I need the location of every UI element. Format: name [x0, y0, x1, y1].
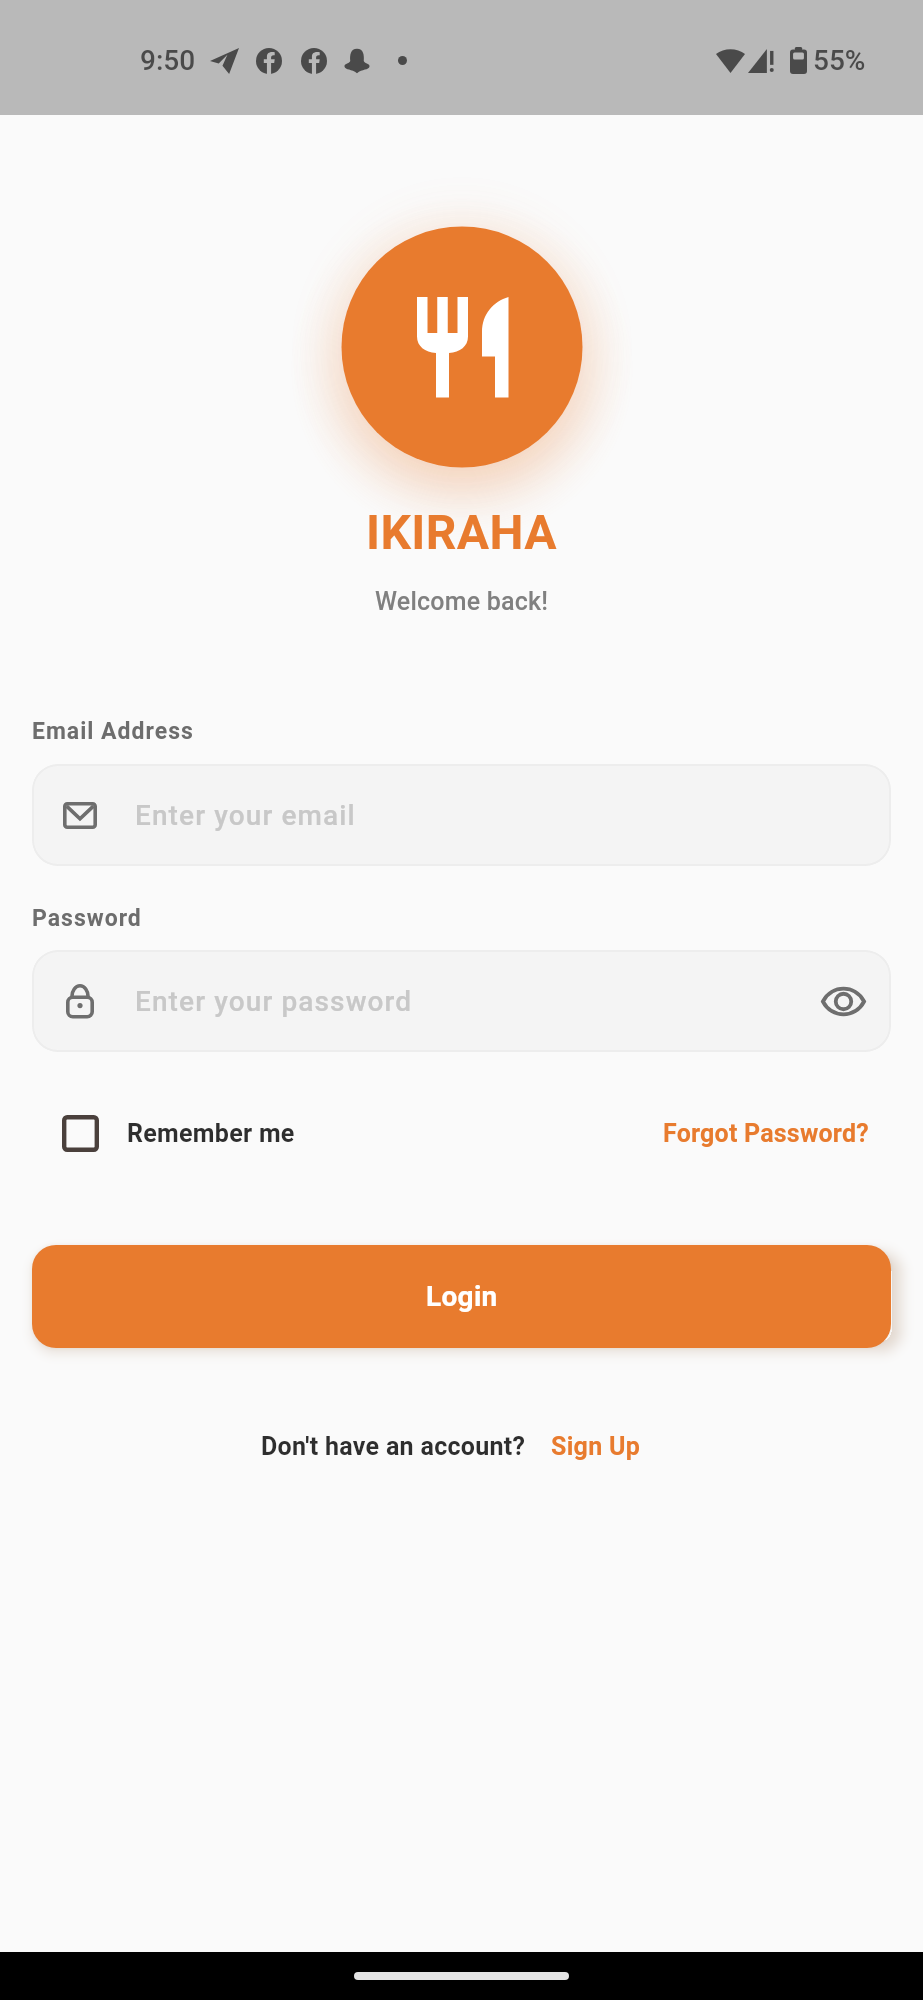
- staticText: 9:50: [140, 44, 196, 77]
- button[interactable]: Enter your password: [32, 950, 891, 1052]
- staticText: Enter your email: [135, 799, 356, 832]
- button[interactable]: Enter your email: [32, 764, 891, 866]
- staticText: Email Address: [32, 718, 194, 745]
- button[interactable]: Show password: [817, 975, 869, 1027]
- staticText: Forgot Password?: [663, 1119, 869, 1148]
- staticText: Remember me: [127, 1119, 295, 1148]
- button[interactable]: Remember me: [62, 1115, 295, 1152]
- staticText: IKIRAHA: [366, 504, 557, 560]
- button[interactable]: Sign Up: [551, 1432, 641, 1461]
- staticText: Don't have an account?: [261, 1432, 526, 1461]
- staticText: 55%: [813, 44, 866, 77]
- staticText: Password: [32, 905, 142, 932]
- staticText: Login: [426, 1280, 498, 1313]
- button[interactable]: Login: [32, 1245, 891, 1348]
- staticText: Enter your password: [135, 985, 413, 1018]
- button[interactable]: Forgot Password?: [663, 1119, 869, 1148]
- staticText: Sign Up: [551, 1432, 641, 1461]
- staticText: Welcome back!: [375, 587, 549, 616]
